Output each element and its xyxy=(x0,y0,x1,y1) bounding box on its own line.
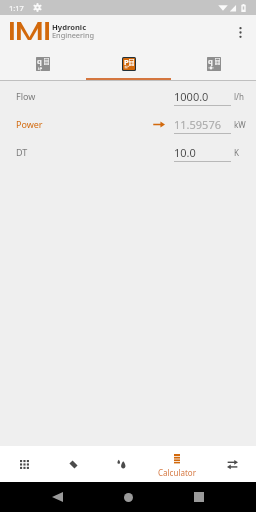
staticText: 1:17 xyxy=(9,3,24,13)
button[interactable]: Calculator xyxy=(145,446,208,482)
button[interactable]: Convert xyxy=(208,446,256,482)
button[interactable]: Apps xyxy=(0,446,49,482)
button[interactable]: DT xyxy=(0,137,256,165)
staticText: Hydronic xyxy=(52,22,87,32)
staticText: q xyxy=(37,56,42,66)
staticText: DT xyxy=(16,146,28,158)
button[interactable]: Valves xyxy=(49,446,97,482)
button[interactable]: More options xyxy=(226,18,254,46)
staticText: Engineering xyxy=(52,30,95,40)
button[interactable]: Valve tab xyxy=(171,48,256,78)
button[interactable]: Back xyxy=(42,482,72,512)
button[interactable]: Calculator tab xyxy=(86,48,171,78)
button[interactable]: Drops xyxy=(97,446,145,482)
button[interactable]: Recent apps xyxy=(184,482,214,512)
staticText: Calculator xyxy=(158,467,196,478)
staticText: q xyxy=(208,56,213,66)
staticText: P xyxy=(124,57,129,67)
staticText: K xyxy=(234,147,239,158)
staticText: 1000.0 xyxy=(174,89,209,104)
staticText: 11.59576 xyxy=(174,117,221,132)
button[interactable]: Power xyxy=(0,109,256,137)
button[interactable]: Home xyxy=(113,482,143,512)
staticText: Power xyxy=(16,118,43,130)
button[interactable]: Flow tab xyxy=(0,48,86,78)
staticText: Flow xyxy=(16,90,36,102)
button[interactable]: Flow xyxy=(0,81,256,109)
staticText: kW xyxy=(234,119,246,130)
staticText: l/h xyxy=(234,91,244,102)
staticText: 10.0 xyxy=(174,145,196,160)
